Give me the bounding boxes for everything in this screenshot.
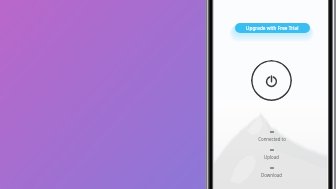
staticText: Upload [264, 154, 279, 160]
staticText: Connected to [258, 136, 286, 142]
staticText: Upgrade with Free Trial [246, 25, 299, 31]
staticText: Download [261, 172, 282, 178]
button[interactable]: Power [251, 60, 292, 101]
button[interactable]: Upgrade with Free Trial [235, 23, 310, 33]
